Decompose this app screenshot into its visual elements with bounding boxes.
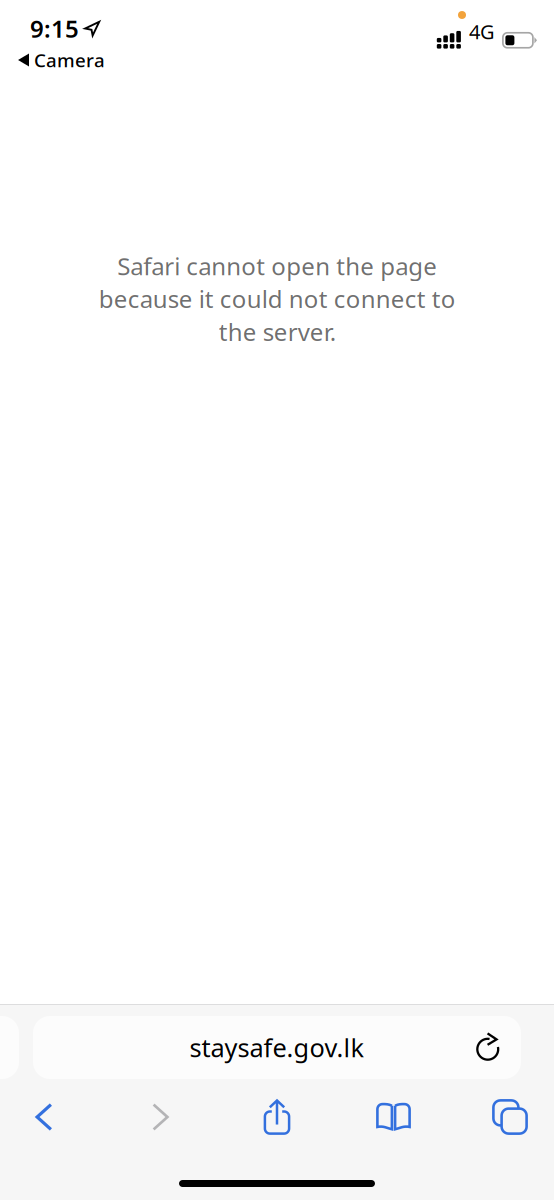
button[interactable]: Forward: [125, 1093, 195, 1141]
button[interactable]: Camera: [0, 48, 115, 72]
button[interactable]: staysafe.gov.lk: [33, 1016, 521, 1079]
button[interactable]: Tabs: [475, 1093, 545, 1141]
button[interactable]: Bookmarks: [358, 1093, 428, 1141]
staticText: 4G: [469, 18, 495, 45]
staticText: Safari cannot open the page: [117, 250, 437, 282]
staticText: because it could not connect to: [98, 283, 455, 315]
button[interactable]: Share: [242, 1093, 312, 1141]
staticText: the server.: [218, 316, 335, 348]
button[interactable]: Back: [9, 1093, 79, 1141]
staticText: 9:15: [30, 13, 79, 44]
staticText: Camera: [34, 48, 105, 72]
staticText: staysafe.gov.lk: [189, 1031, 364, 1064]
